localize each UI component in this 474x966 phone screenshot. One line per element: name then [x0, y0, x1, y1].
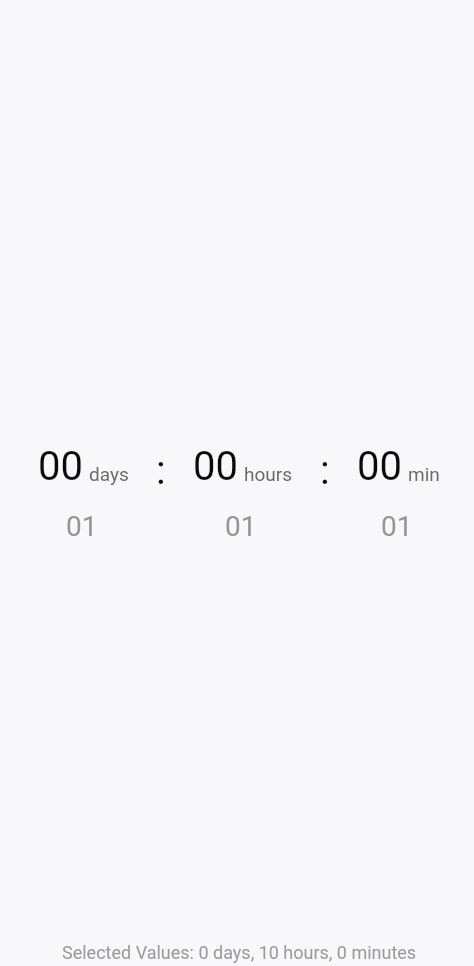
staticText: Selected Values: 0 days, 10 hours, 0 min… [62, 942, 417, 963]
staticText: : [320, 447, 330, 494]
staticText: hours [244, 463, 293, 485]
staticText: : [156, 447, 166, 494]
button[interactable]: 00 days [38, 443, 129, 543]
staticText: 01 [381, 510, 413, 543]
staticText: 01 [66, 510, 98, 543]
staticText: 00 [193, 443, 238, 490]
button[interactable]: 00 min [357, 443, 440, 543]
staticText: days [89, 463, 129, 485]
staticText: 00 [38, 443, 83, 490]
staticText: 00 [357, 443, 402, 490]
button[interactable]: 00 hours [193, 443, 293, 543]
staticText: 01 [225, 510, 257, 543]
staticText: min [408, 463, 440, 485]
